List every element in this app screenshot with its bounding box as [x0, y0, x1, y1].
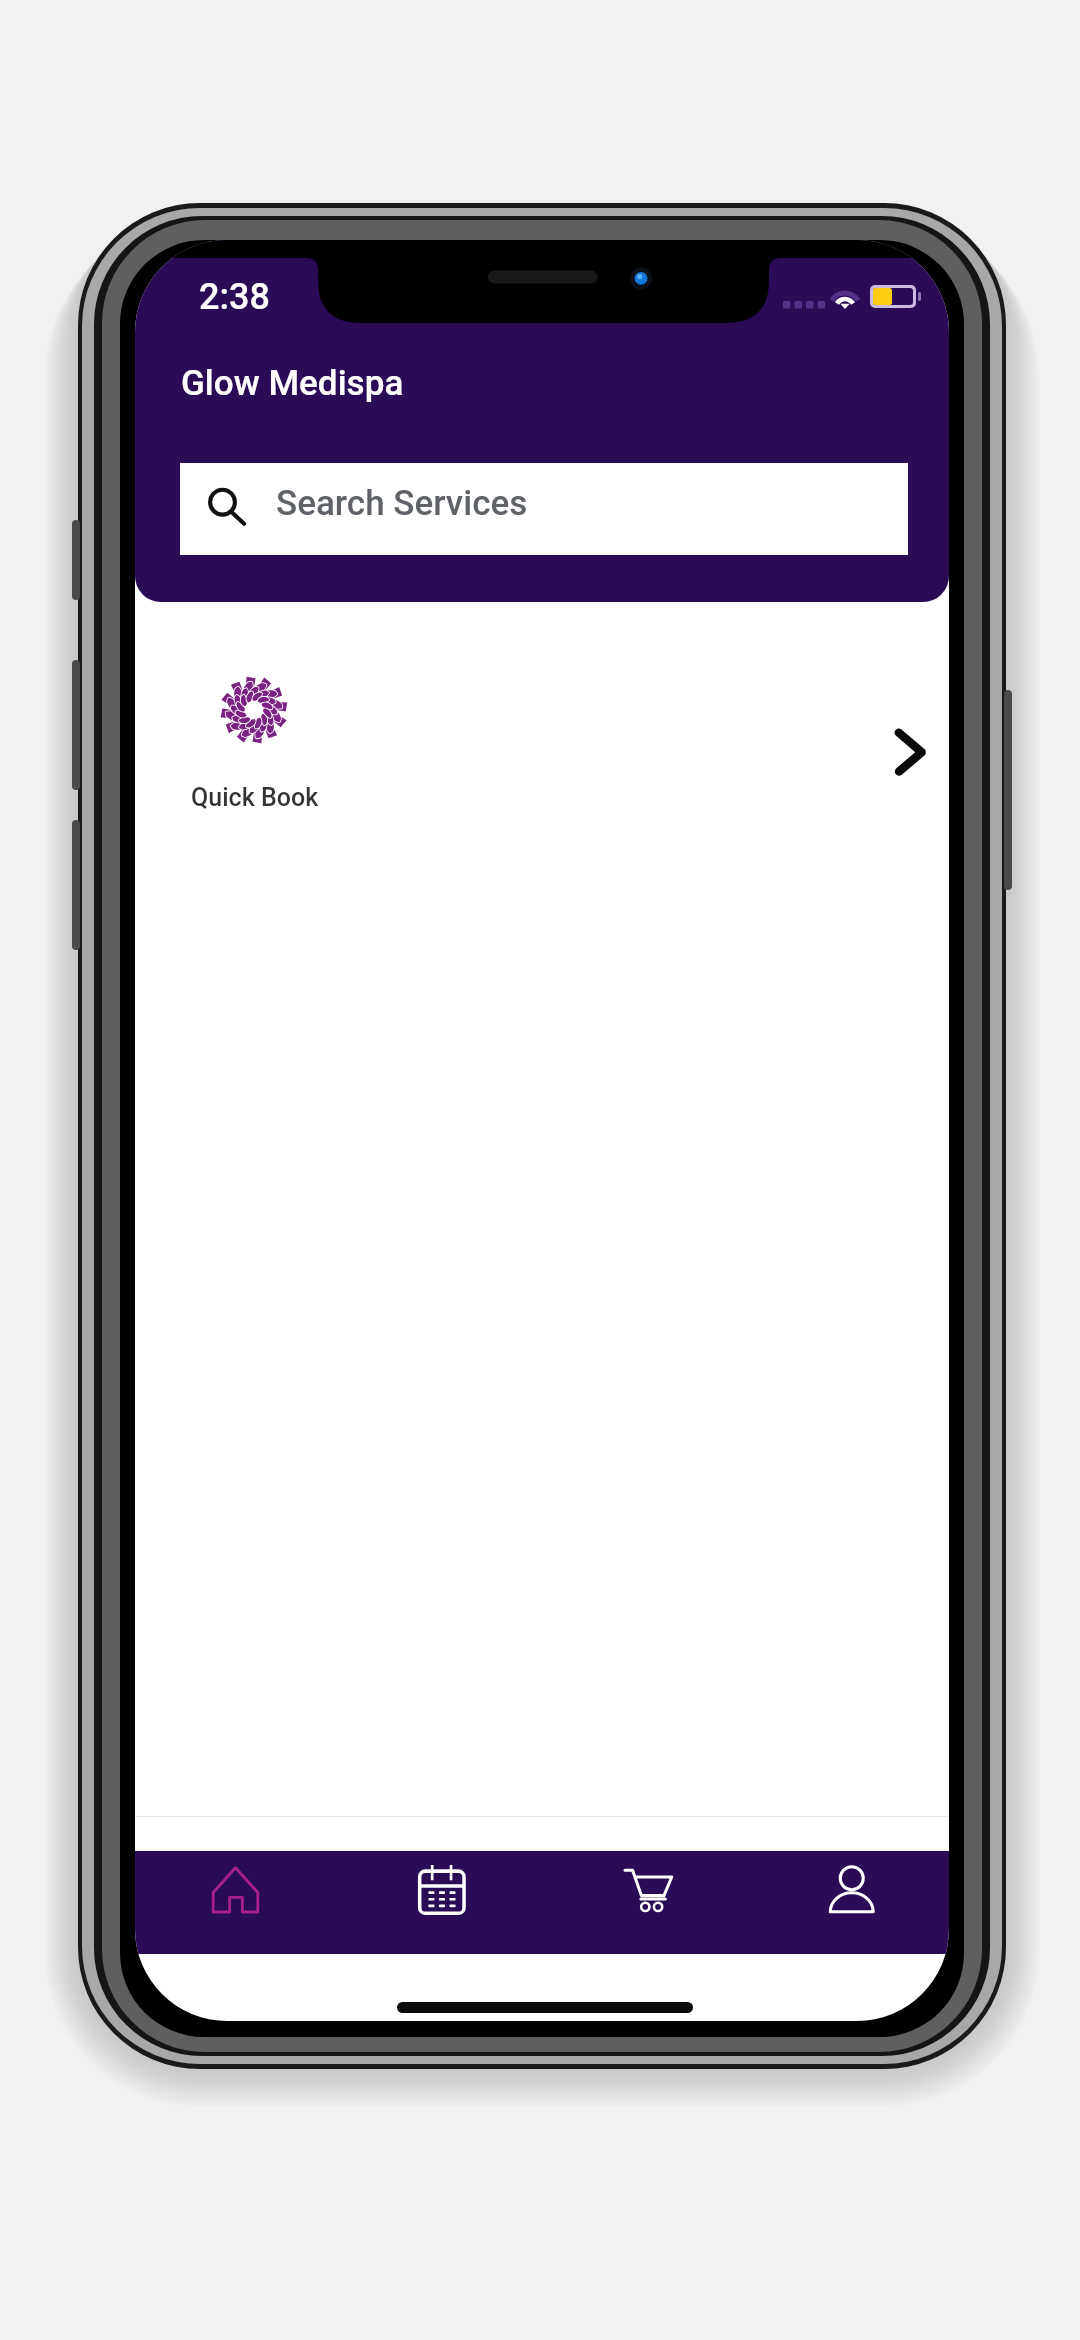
other: Search — [208, 487, 252, 531]
button[interactable]: Profile — [745, 1851, 949, 1954]
other: Open Quick Book — [880, 724, 936, 780]
button[interactable]: Search — [180, 463, 908, 555]
staticText: 2:38 — [199, 276, 270, 318]
staticText: Search Services — [276, 483, 528, 524]
staticText: Glow Medispa — [181, 363, 404, 404]
button[interactable]: Appointments — [338, 1851, 541, 1954]
button[interactable]: Cart — [541, 1851, 745, 1954]
button[interactable]: Home — [135, 1851, 338, 1954]
other: Status icons — [783, 284, 923, 310]
staticText: Quick Book — [191, 783, 319, 812]
button[interactable]: Quick Book — [135, 602, 949, 842]
